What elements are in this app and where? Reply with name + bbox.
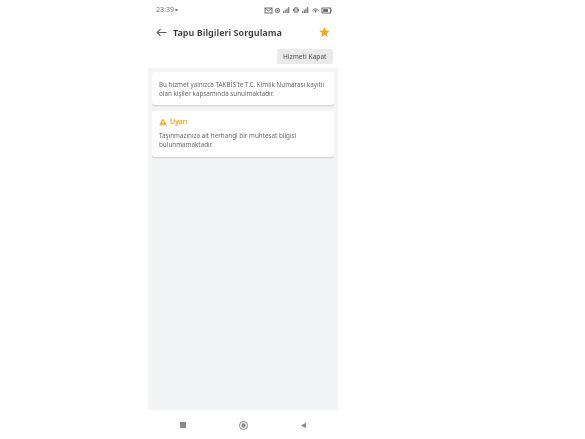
staticText: Uyarı [170,117,188,127]
staticText: 23:39 [156,5,174,15]
button[interactable]: Recent apps [174,416,192,434]
button[interactable]: Uyarı [152,111,334,157]
button[interactable]: Favorite [315,23,333,41]
button[interactable]: Back [294,416,312,434]
staticText: Taşınmazınıza ait herhangi bir muhtesat … [159,131,327,149]
staticText: Bu hizmet yalnızca TAKBİS'te T.C. Kimlik… [159,80,327,98]
staticText: Hizmeti Kapat [283,52,327,61]
button[interactable]: Bu hizmet yalnızca TAKBİS'te T.C. Kimlik… [152,72,334,105]
button[interactable]: Back [152,23,170,41]
button[interactable]: Hizmeti Kapat [277,49,333,64]
staticText: Tapu Bilgileri Sorgulama [173,26,282,38]
button[interactable]: Home [234,416,252,434]
